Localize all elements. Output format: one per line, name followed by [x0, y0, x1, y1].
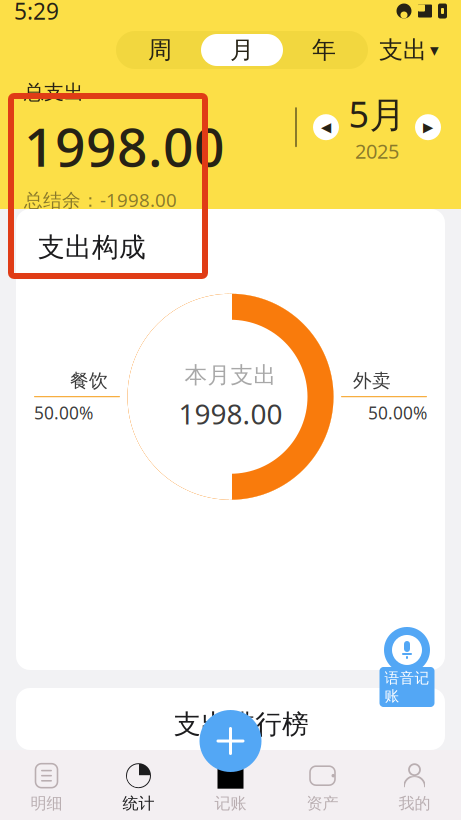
button[interactable]: 记账 [184, 750, 276, 820]
button[interactable]: 支出 [369, 31, 449, 69]
staticText: 语音记账 [384, 669, 429, 705]
staticText: ◀ [321, 120, 331, 135]
button[interactable]: Previous month [311, 112, 341, 142]
button[interactable]: 周 [119, 34, 201, 66]
staticText: 5月 [348, 90, 405, 138]
staticText: 支出 [379, 35, 427, 65]
button[interactable]: Voice entry [375, 632, 439, 702]
staticText: 外卖 [353, 369, 391, 392]
staticText: 我的 [398, 794, 430, 813]
button[interactable]: Add record [195, 706, 265, 776]
staticText: 本月支出 [184, 361, 276, 389]
staticText: 周 [148, 35, 172, 65]
staticText: 月 [230, 35, 254, 65]
button[interactable]: 统计 [92, 750, 184, 820]
staticText: 1998.00 [24, 111, 225, 181]
staticText: 明细 [30, 794, 62, 813]
staticText: 50.00% [34, 401, 93, 424]
staticText: 总结余：-1998.00 [24, 187, 177, 212]
button[interactable]: 资产 [276, 750, 368, 820]
button[interactable]: 明细 [0, 750, 92, 820]
staticText: ▶ [423, 120, 433, 135]
staticText: 5:29 [14, 0, 59, 26]
button[interactable]: 我的 [368, 750, 460, 820]
staticText: 支出构成 [38, 231, 146, 264]
staticText: 资产 [306, 794, 338, 813]
staticText: 2025 [355, 138, 399, 164]
button[interactable]: 月 [201, 34, 283, 66]
staticText: ▾ [430, 40, 439, 60]
staticText: 支出排行榜 [174, 708, 309, 741]
staticText: 总支出 [24, 80, 84, 105]
button[interactable]: Next month [413, 112, 443, 142]
staticText: 年 [312, 35, 336, 65]
staticText: 1998.00 [178, 395, 282, 432]
staticText: 统计 [122, 794, 154, 813]
staticText: 餐饮 [70, 369, 108, 392]
button[interactable]: 年 [283, 34, 365, 66]
staticText: 50.00% [368, 401, 427, 424]
staticText: 记账 [214, 794, 246, 813]
